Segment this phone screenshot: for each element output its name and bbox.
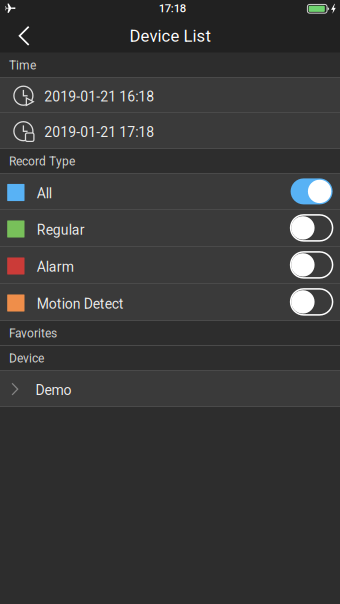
staticText: Regular: [37, 222, 85, 238]
staticText: 17:18: [159, 2, 186, 15]
staticText: All: [37, 185, 52, 202]
staticText: Time: [9, 58, 36, 72]
staticText: 2019-01-21 16:18: [44, 88, 154, 105]
staticText: Favorites: [9, 326, 57, 341]
button[interactable]: Regular: [0, 210, 340, 247]
button[interactable]: Alarm: [0, 247, 340, 284]
staticText: Device List: [129, 26, 210, 46]
staticText: Record Type: [9, 154, 75, 169]
button[interactable]: Motion Detect: [0, 284, 340, 321]
staticText: Device: [9, 351, 44, 366]
staticText: 2019-01-21 17:18: [44, 124, 154, 140]
staticText: Motion Detect: [37, 296, 124, 312]
button[interactable]: 2019-01-21 16:18: [0, 78, 340, 113]
button[interactable]: Back: [0, 20, 52, 53]
button[interactable]: All: [0, 174, 340, 210]
staticText: Demo: [35, 382, 71, 398]
staticText: Alarm: [37, 259, 74, 275]
button[interactable]: 2019-01-21 17:18: [0, 113, 340, 149]
button[interactable]: Demo: [0, 371, 340, 407]
